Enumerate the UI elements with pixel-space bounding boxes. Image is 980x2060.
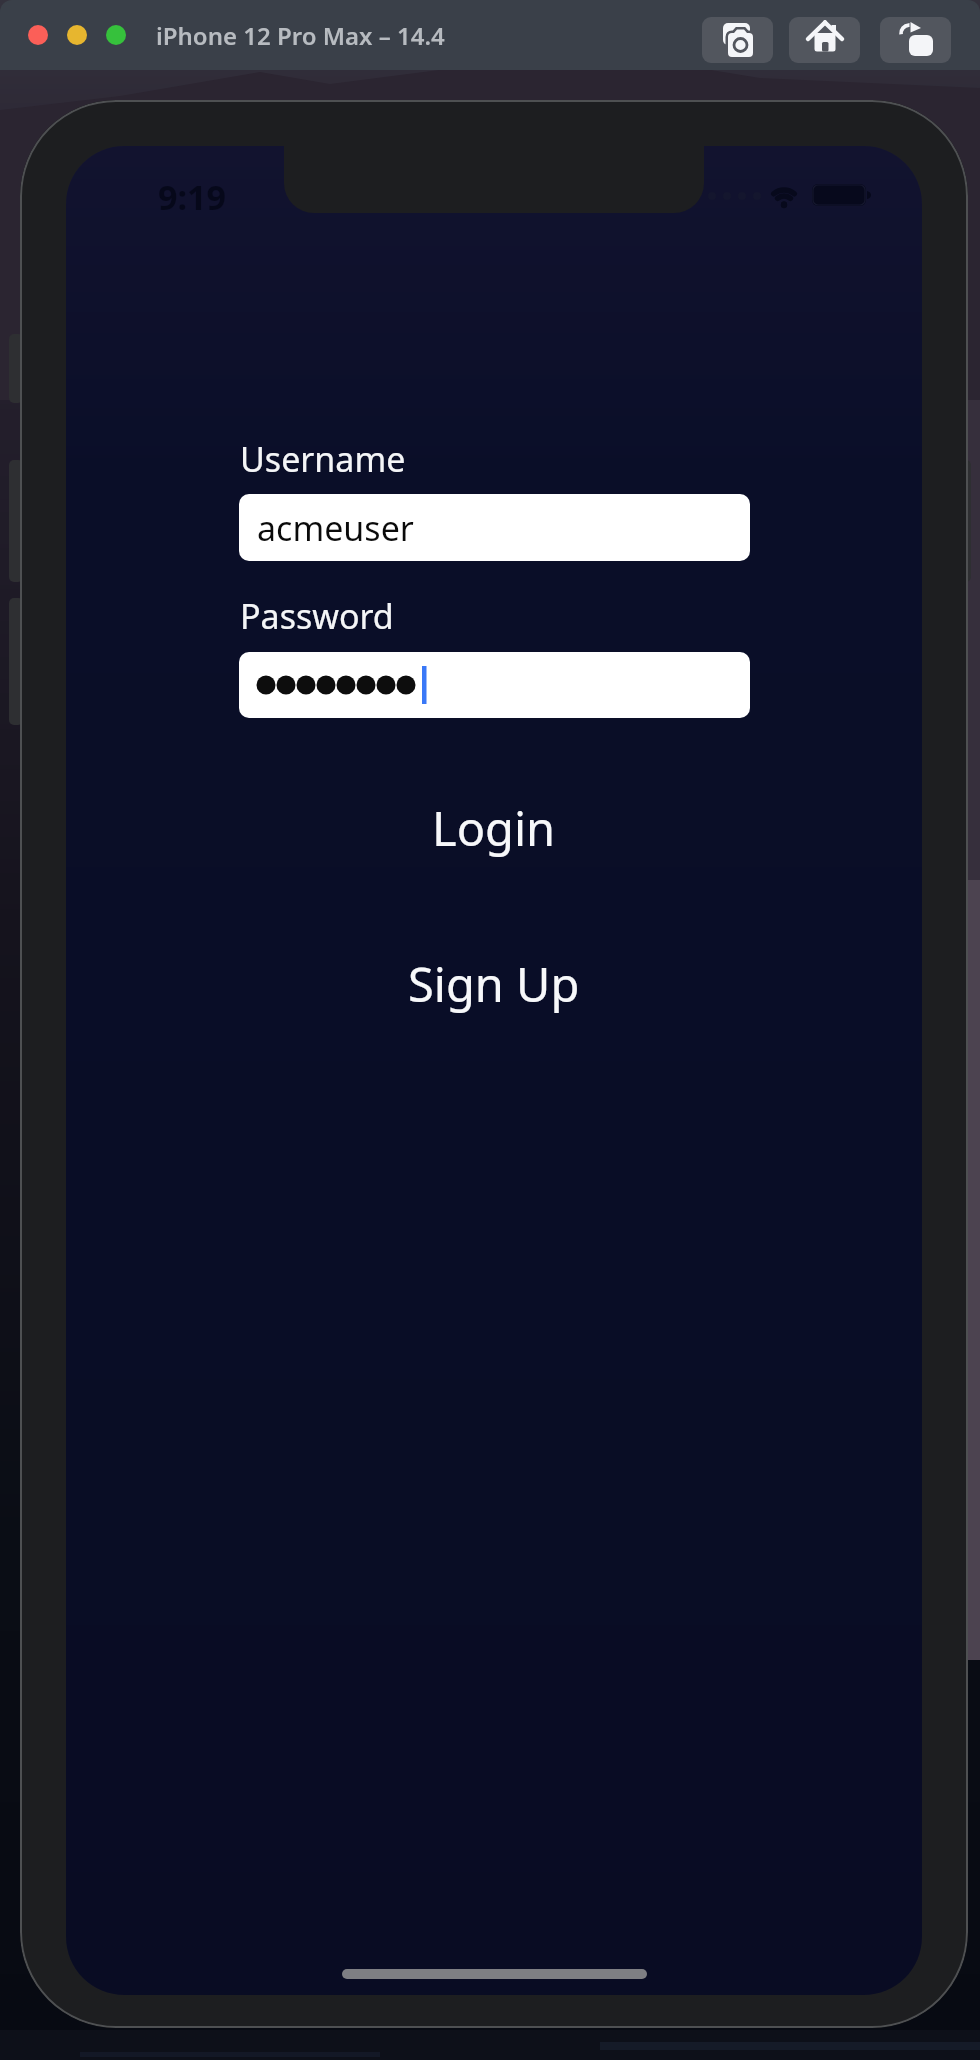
staticText: Sign Up bbox=[408, 952, 580, 1016]
staticText: acmeuser bbox=[257, 505, 414, 551]
button[interactable]: Sign Up bbox=[66, 952, 922, 1016]
button[interactable] bbox=[702, 17, 773, 63]
staticText: 9:19 bbox=[158, 174, 226, 220]
staticText: iPhone 12 Pro Max – 14.4 bbox=[156, 19, 445, 52]
staticText: Username bbox=[240, 436, 406, 482]
staticText: Login bbox=[432, 796, 556, 860]
button[interactable] bbox=[880, 17, 951, 63]
button[interactable] bbox=[239, 652, 750, 718]
button[interactable]: acmeuser bbox=[239, 494, 750, 561]
staticText: Password bbox=[240, 593, 394, 639]
button[interactable] bbox=[28, 25, 48, 45]
button[interactable] bbox=[106, 25, 126, 45]
button[interactable] bbox=[67, 25, 87, 45]
button[interactable] bbox=[789, 17, 860, 63]
button[interactable]: Login bbox=[66, 796, 922, 860]
